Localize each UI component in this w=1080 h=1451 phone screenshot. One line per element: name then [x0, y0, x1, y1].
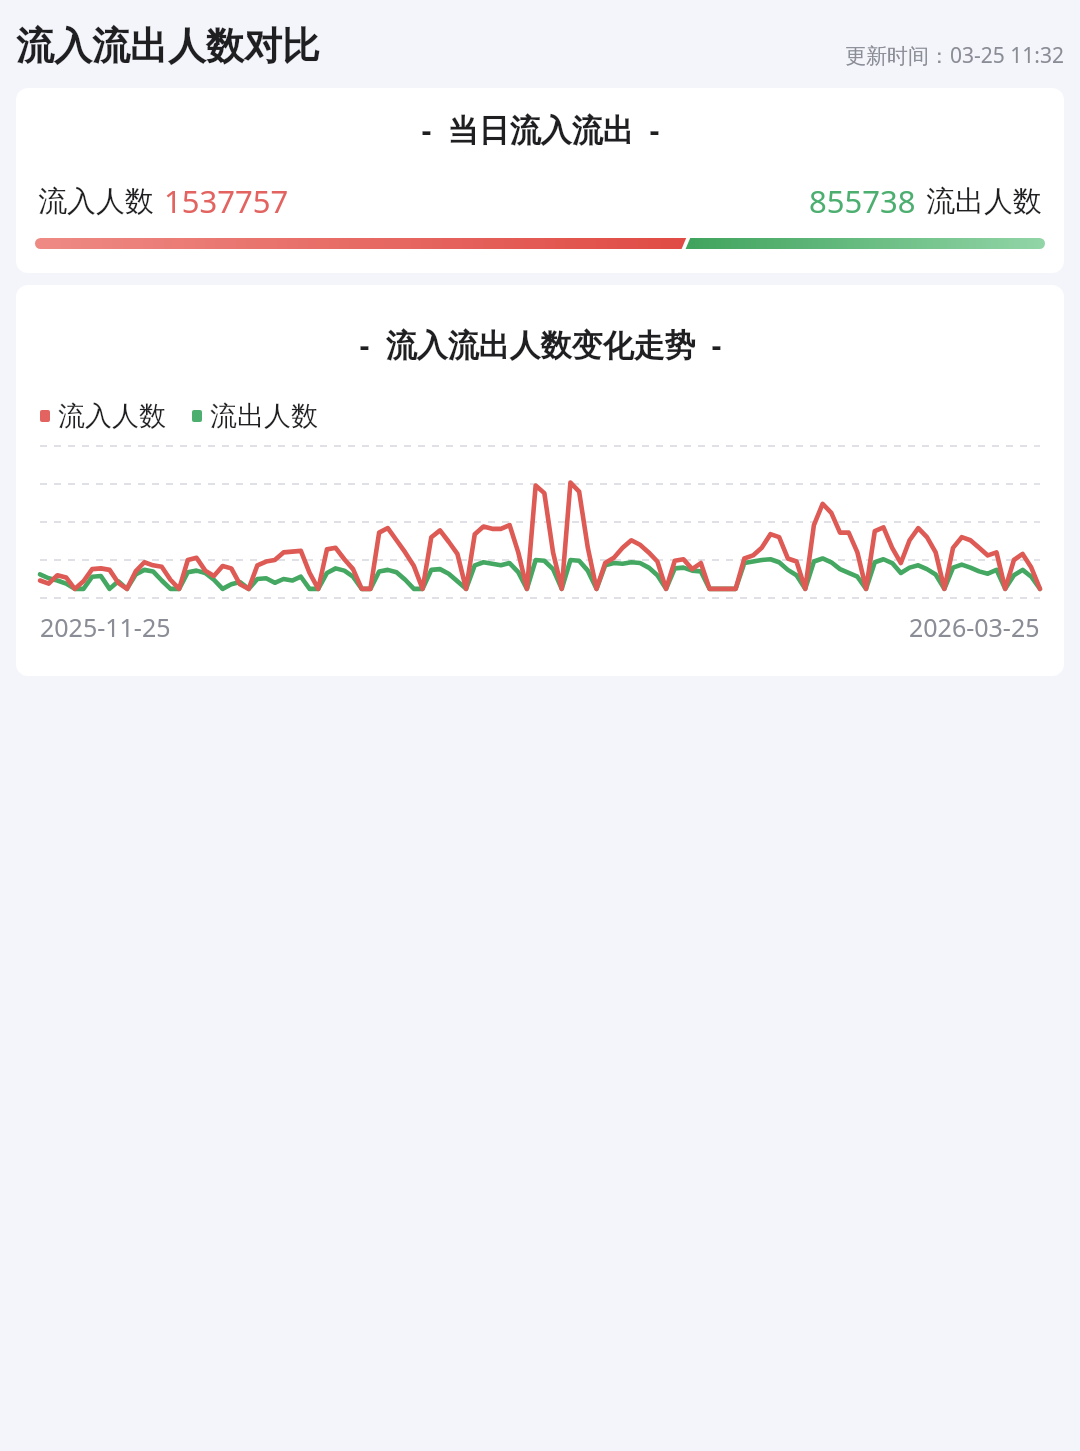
button[interactable]: 流出人数 [192, 399, 318, 433]
staticText: 2026-03-25 [909, 610, 1040, 644]
staticText: - 流入流出人数变化走势 - [359, 323, 722, 365]
staticText: 流入人数 [38, 183, 154, 220]
staticText: 1537757 [164, 180, 289, 222]
button[interactable]: - 当日流入流出 - [16, 88, 1064, 273]
button[interactable]: 流入人数 [40, 399, 166, 433]
staticText: 855738 [809, 180, 916, 222]
staticText: 流入人数 [58, 399, 166, 433]
button[interactable]: - 流入流出人数变化走势 - [16, 285, 1064, 676]
staticText: 流出人数 [210, 399, 318, 433]
staticText: 流出人数 [926, 183, 1042, 220]
staticText: 更新时间：03-25 11:32 [845, 41, 1064, 70]
staticText: 2025-11-25 [40, 610, 171, 644]
staticText: - 当日流入流出 - [421, 108, 660, 150]
staticText: 流入流出人数对比 [16, 22, 320, 70]
other: 流入流出人数变化走势折线图 [40, 446, 1040, 598]
